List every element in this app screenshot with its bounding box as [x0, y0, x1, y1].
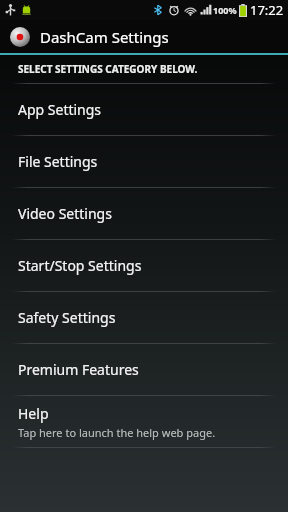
button[interactable]: Help: [0, 396, 288, 447]
staticText: Premium Features: [18, 360, 139, 379]
button[interactable]: Video Settings: [0, 188, 288, 239]
button[interactable]: Premium Features: [0, 344, 288, 395]
button[interactable]: File Settings: [0, 136, 288, 187]
button[interactable]: Start/Stop Settings: [0, 240, 288, 291]
other: DashCam app icon: [10, 27, 30, 47]
staticText: Video Settings: [18, 204, 112, 223]
staticText: SELECT SETTINGS CATEGORY BELOW.: [18, 62, 198, 76]
staticText: 100%: [213, 4, 237, 16]
staticText: Safety Settings: [18, 308, 116, 327]
staticText: Tap here to launch the help web page.: [18, 425, 216, 440]
staticText: File Settings: [18, 152, 98, 171]
button[interactable]: Safety Settings: [0, 292, 288, 343]
staticText: Help: [18, 404, 49, 423]
staticText: 17:22: [250, 1, 284, 19]
staticText: App Settings: [18, 100, 102, 119]
staticText: DashCam Settings: [40, 27, 169, 47]
button[interactable]: App Settings: [0, 84, 288, 135]
staticText: Start/Stop Settings: [18, 256, 142, 275]
